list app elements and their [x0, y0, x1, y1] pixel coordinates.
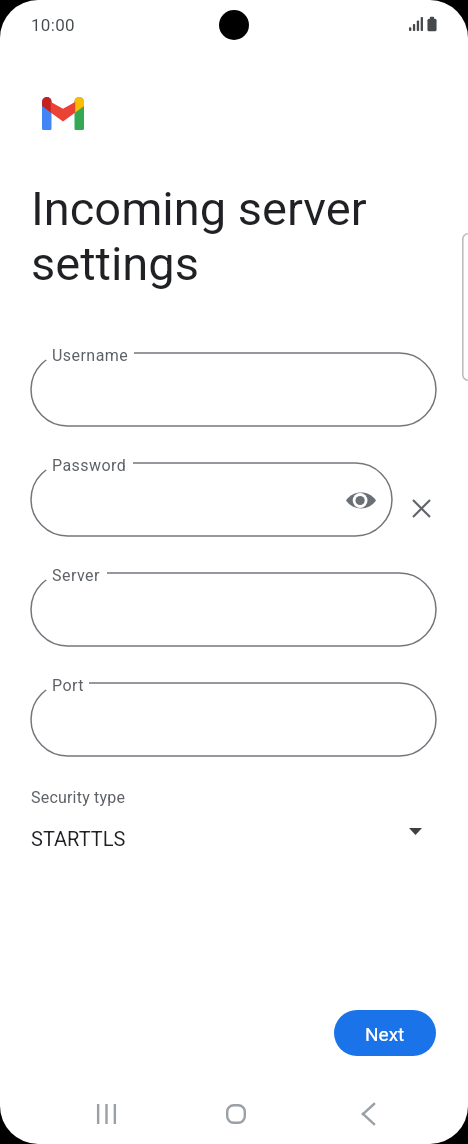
button[interactable]: Clear — [399, 486, 443, 530]
button[interactable]: Password — [31, 463, 392, 536]
staticText: Password — [52, 456, 127, 475]
staticText: Username — [52, 346, 129, 365]
staticText: Server — [52, 566, 100, 585]
staticText: Incoming server settings — [31, 181, 367, 291]
staticText: 10:00 — [31, 15, 75, 35]
button[interactable]: Security type — [0, 782, 468, 860]
staticText: STARTTLS — [31, 827, 126, 850]
button[interactable]: Server — [31, 573, 436, 646]
staticText: Security type — [31, 788, 126, 807]
button[interactable]: Back — [328, 1089, 408, 1139]
button[interactable]: Show password — [340, 479, 382, 521]
staticText: Port — [52, 676, 84, 695]
button[interactable]: Home — [196, 1089, 276, 1139]
button[interactable]: Port — [31, 683, 436, 756]
button[interactable]: Username — [31, 353, 436, 426]
button[interactable]: Recent apps — [66, 1089, 146, 1139]
staticText: Next — [365, 1023, 405, 1045]
button[interactable]: Next — [334, 1010, 436, 1056]
